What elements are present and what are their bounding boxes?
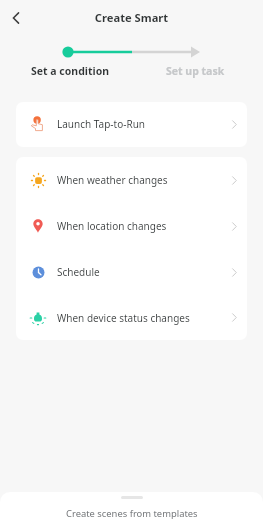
staticText: Create scenes from templates (66, 507, 198, 520)
button[interactable]: When device status changes (16, 295, 247, 340)
staticText: Launch Tap-to-Run (57, 117, 145, 131)
staticText: When device status changes (57, 311, 190, 325)
staticText: When location changes (57, 219, 167, 233)
staticText: Create Smart (0, 10, 263, 25)
button[interactable]: When weather changes (16, 157, 247, 203)
button[interactable]: Back (4, 6, 28, 30)
staticText: Schedule (57, 265, 100, 279)
button[interactable]: Launch Tap-to-Run (16, 102, 247, 146)
button[interactable]: Schedule (16, 249, 247, 295)
staticText: Set up task (166, 64, 225, 78)
button[interactable]: Create scenes from templates (0, 492, 263, 529)
staticText: Set a condition (31, 64, 110, 78)
staticText: When weather changes (57, 173, 168, 187)
button[interactable]: When location changes (16, 203, 247, 249)
